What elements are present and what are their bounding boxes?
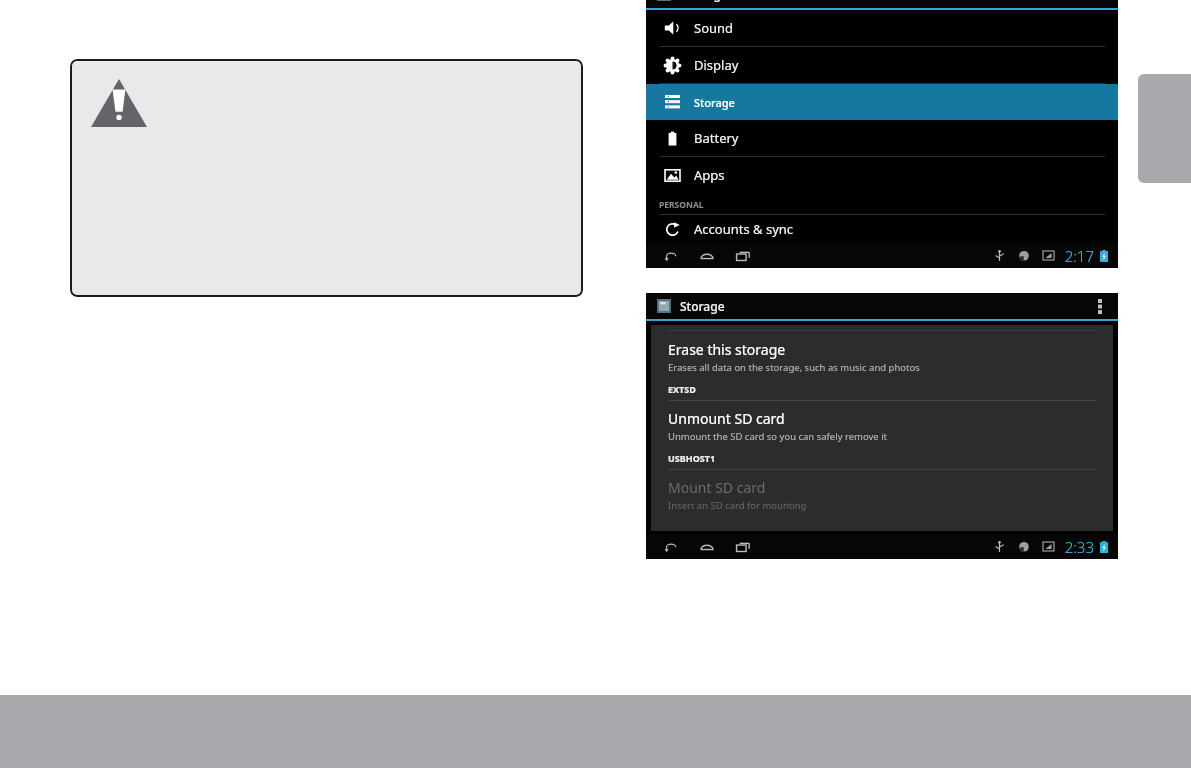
button[interactable]: Home xyxy=(696,245,718,267)
button[interactable]: Back xyxy=(660,245,682,267)
button[interactable]: Storage xyxy=(646,84,1118,120)
staticText: Insert an SD card for mounting xyxy=(668,499,807,512)
button[interactable]: Unmount SD card xyxy=(668,409,1096,443)
staticText: Erases all data on the storage, such as … xyxy=(668,361,920,374)
button[interactable]: Display xyxy=(646,47,1118,83)
staticText: Erase this storage xyxy=(668,340,786,359)
staticText: 2:33 xyxy=(1064,537,1094,557)
staticText: Unmount SD card xyxy=(668,409,785,428)
staticText: 2:17 xyxy=(1064,246,1094,266)
button: Mount SD card xyxy=(668,478,1096,512)
button[interactable]: Back xyxy=(660,536,682,558)
button[interactable]: Recent apps xyxy=(732,536,754,558)
staticText: Sound xyxy=(694,19,734,37)
button[interactable]: Apps xyxy=(646,157,1118,193)
button[interactable]: Recent apps xyxy=(732,245,754,267)
button[interactable]: Home xyxy=(696,536,718,558)
staticText: USBHOST1 xyxy=(668,452,716,464)
staticText: Storage xyxy=(694,95,735,110)
button[interactable]: More options xyxy=(1092,295,1108,317)
staticText: Display xyxy=(694,56,739,74)
staticText: Unmount the SD card so you can safely re… xyxy=(668,430,888,443)
staticText: Accounts & sync xyxy=(694,220,794,238)
button[interactable]: Sound xyxy=(646,10,1118,46)
staticText: Settings xyxy=(680,0,727,2)
staticText: PERSONAL xyxy=(659,199,704,211)
staticText: Battery xyxy=(694,129,739,147)
staticText: Storage xyxy=(680,298,725,314)
button[interactable]: Accounts & sync xyxy=(646,215,1118,243)
staticText: Apps xyxy=(694,166,725,184)
button[interactable]: Battery xyxy=(646,120,1118,156)
staticText: EXTSD xyxy=(668,383,696,395)
staticText: Mount SD card xyxy=(668,478,766,497)
button[interactable]: Erase this storage xyxy=(668,340,1096,374)
